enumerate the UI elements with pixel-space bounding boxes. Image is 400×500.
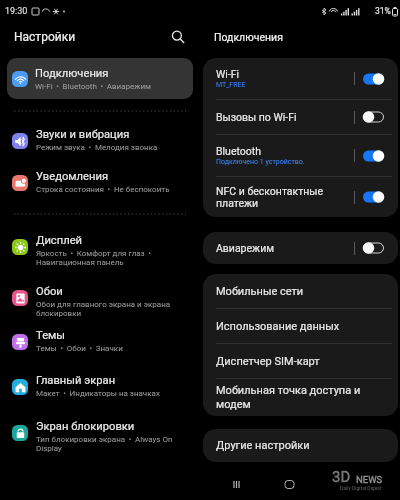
- button[interactable]: Экран блокировки: [12, 423, 200, 456]
- staticText: Диспетчер SIM-карт: [216, 355, 320, 368]
- staticText: Мобильные сети: [216, 285, 304, 298]
- staticText: Темы • Обои • Значки: [36, 344, 123, 353]
- staticText: Настройки: [14, 30, 76, 44]
- button[interactable]: Главный экран: [277, 472, 302, 497]
- staticText: 3D: [332, 468, 351, 486]
- button[interactable]: Дисплей: [12, 237, 200, 270]
- staticText: Подключено 1 устройство.: [216, 158, 305, 166]
- button[interactable]: Подключения: [7, 58, 193, 99]
- button[interactable]: Звуки и вибрация: [12, 131, 200, 155]
- staticText: Экран блокировки: [36, 420, 135, 433]
- staticText: Строка состояния • Не беспокоить: [36, 185, 170, 194]
- staticText: MT_FREE: [216, 81, 246, 89]
- button[interactable]: Поиск: [167, 26, 189, 48]
- button[interactable]: Диспетчер SIM-карт: [216, 344, 385, 378]
- button[interactable]: Bluetooth: [216, 135, 385, 176]
- staticText: NEWS: [356, 474, 383, 485]
- button[interactable]: Включено: [363, 149, 385, 163]
- button[interactable]: Выключено: [363, 241, 385, 255]
- staticText: блокировки: [36, 309, 82, 318]
- button[interactable]: Вызовы по Wi-Fi: [216, 100, 385, 134]
- button[interactable]: Назад: [330, 472, 355, 497]
- staticText: Bluetooth: [216, 145, 261, 157]
- button[interactable]: Мобильная точка доступа и модем: [216, 379, 385, 416]
- staticText: Daily Digital Digest: [340, 485, 382, 491]
- staticText: Display: [36, 444, 62, 453]
- staticText: Подключения: [35, 67, 109, 80]
- staticText: Вызовы по Wi-Fi: [216, 111, 297, 123]
- staticText: Мобильная точка доступа и модем: [216, 384, 361, 411]
- button[interactable]: Wi-Fi: [216, 58, 385, 99]
- staticText: NFC и бесконтактные платежи: [216, 185, 324, 210]
- staticText: Режим звука • Мелодия звонка: [36, 143, 158, 152]
- button[interactable]: Темы: [12, 332, 200, 356]
- button[interactable]: Уведомления: [12, 173, 200, 197]
- button[interactable]: NFC и бесконтактные платежи: [216, 177, 385, 217]
- button[interactable]: Использование данных: [216, 309, 385, 343]
- staticText: 31%: [375, 6, 391, 16]
- staticText: Wi-Fi: [216, 68, 240, 80]
- staticText: Навигационная панель: [36, 258, 124, 267]
- staticText: Обои: [36, 285, 63, 298]
- staticText: Использование данных: [216, 320, 340, 333]
- staticText: Темы: [36, 329, 66, 342]
- button[interactable]: Мобильные сети: [216, 274, 385, 308]
- button[interactable]: Включено: [363, 72, 385, 86]
- staticText: Главный экран: [36, 374, 116, 387]
- staticText: Макет • Индикаторы на значках: [36, 389, 160, 398]
- button[interactable]: Выключено: [363, 110, 385, 124]
- button[interactable]: Авиарежим: [216, 232, 385, 264]
- staticText: Яркость • Комфорт для глаз •: [36, 249, 151, 258]
- staticText: Тип блокировки экрана • Always On: [36, 435, 173, 444]
- staticText: Авиарежим: [216, 242, 274, 254]
- button[interactable]: Главный экран: [12, 377, 200, 401]
- button[interactable]: Другие настройки: [216, 429, 385, 462]
- staticText: Wi-Fi • Bluetooth • Авиарежим: [35, 82, 151, 91]
- staticText: Другие настройки: [216, 439, 310, 452]
- button[interactable]: Включено: [363, 190, 385, 204]
- button[interactable]: Недавние приложения: [224, 472, 249, 497]
- staticText: Звуки и вибрация: [36, 128, 130, 141]
- staticText: Уведомления: [36, 170, 109, 183]
- button[interactable]: Обои: [12, 288, 200, 321]
- staticText: 19:30: [5, 6, 28, 17]
- staticText: Подключения: [214, 31, 283, 43]
- staticText: Обои для главного экрана и экрана: [36, 300, 171, 309]
- staticText: Дисплей: [36, 234, 83, 247]
